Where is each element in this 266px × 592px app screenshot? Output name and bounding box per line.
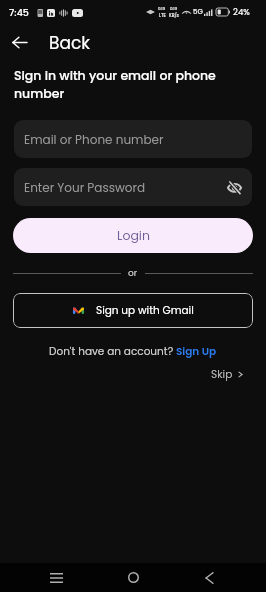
button[interactable]: Email or Phone number <box>14 120 252 158</box>
staticText: or <box>128 267 138 280</box>
staticText: 7:45 <box>9 6 29 19</box>
button[interactable]: Home <box>111 563 156 592</box>
button[interactable]: Back <box>187 563 231 592</box>
button[interactable]: Don't have an account? Sign Up <box>49 344 217 359</box>
staticText: KB/s <box>169 12 179 18</box>
button[interactable]: Sign up with Gmail <box>13 293 253 328</box>
staticText: 5G <box>193 7 203 17</box>
staticText: LTE <box>159 12 166 18</box>
staticText: Login <box>117 227 150 244</box>
staticText: Enter Your Password <box>24 179 146 196</box>
staticText: Back <box>49 31 90 55</box>
staticText: Sign up with Gmail <box>96 303 194 318</box>
staticText: Skip <box>211 367 233 382</box>
button[interactable]: Back <box>6 29 32 55</box>
staticText: Email or Phone number <box>24 131 164 148</box>
staticText: Sign in with your email or phone number <box>14 67 240 103</box>
button[interactable]: Login <box>13 218 253 253</box>
button[interactable]: Recent apps <box>34 563 78 592</box>
staticText: 24% <box>233 6 250 18</box>
button[interactable]: Skip <box>209 364 246 385</box>
button[interactable]: Enter Your Password <box>14 168 252 206</box>
staticText: 0.19 <box>170 6 178 12</box>
staticText: 0.19 <box>158 6 166 12</box>
button[interactable]: Show password <box>225 178 243 196</box>
